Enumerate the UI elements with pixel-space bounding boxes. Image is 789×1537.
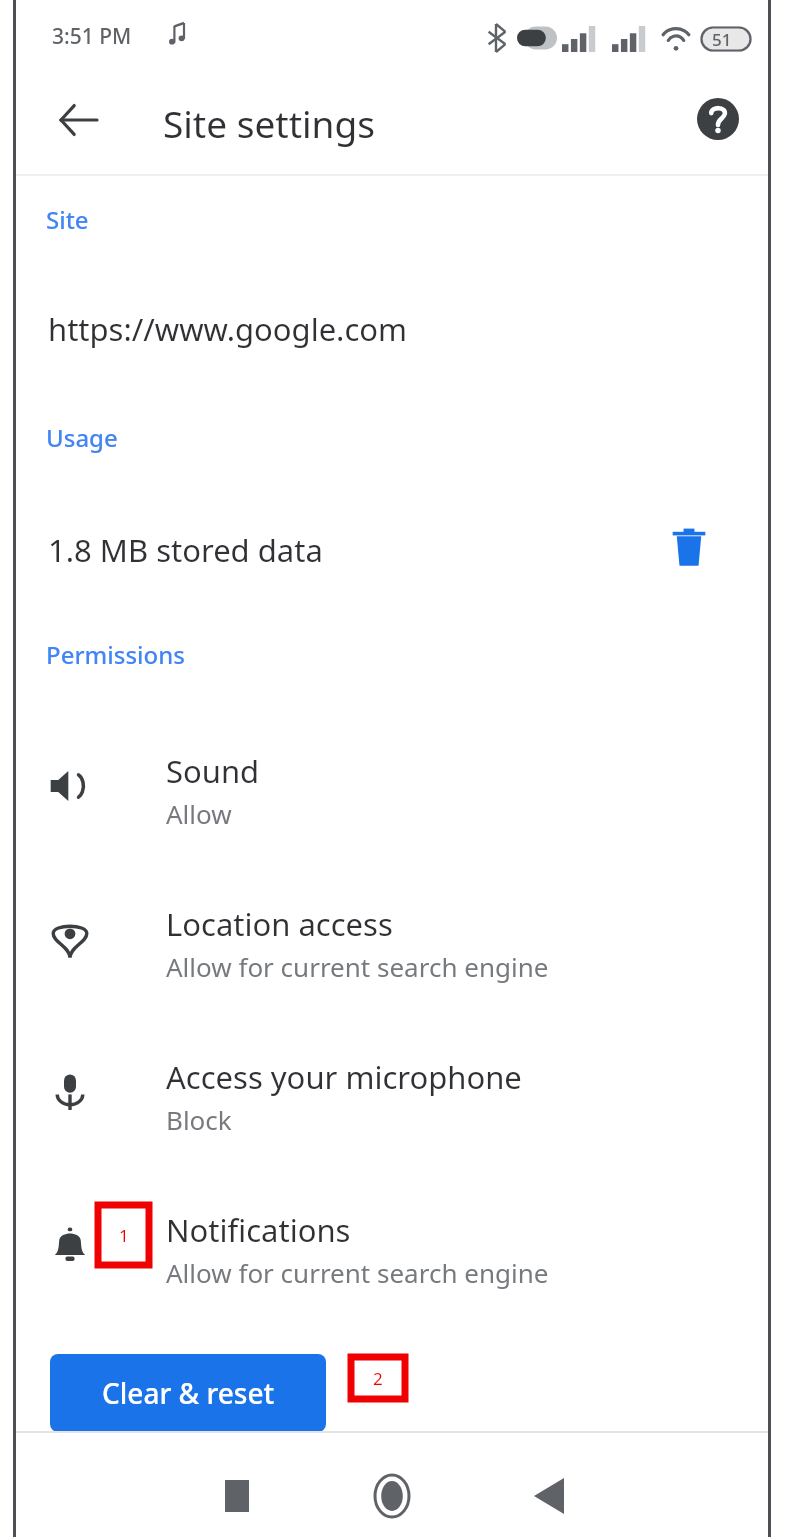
staticText: Usage bbox=[46, 421, 118, 454]
staticText: Site settings bbox=[163, 98, 375, 148]
staticText: Block bbox=[166, 1102, 232, 1137]
button[interactable]: Notifications bbox=[16, 1179, 768, 1319]
button[interactable]: Back bbox=[504, 1451, 594, 1537]
button[interactable]: Home bbox=[347, 1451, 437, 1537]
staticText: Access your microphone bbox=[166, 1056, 522, 1098]
button[interactable]: Recent apps bbox=[192, 1451, 282, 1537]
button[interactable]: Location access bbox=[16, 873, 768, 1013]
button[interactable]: Help bbox=[688, 89, 748, 149]
staticText: Location access bbox=[166, 903, 393, 945]
staticText: https://www.google.com bbox=[48, 308, 408, 350]
staticText: 3:51 PM bbox=[52, 22, 132, 51]
staticText: Site bbox=[46, 203, 89, 236]
staticText: Allow for current search engine bbox=[166, 1255, 549, 1290]
staticText: 2 bbox=[373, 1367, 383, 1390]
staticText: Allow bbox=[166, 796, 232, 831]
button[interactable]: Delete stored data bbox=[656, 514, 722, 580]
staticText: Notifications bbox=[166, 1209, 351, 1251]
staticText: Permissions bbox=[46, 638, 185, 671]
staticText: Clear & reset bbox=[102, 1374, 275, 1412]
button[interactable]: 1.8 MB stored data bbox=[16, 498, 768, 598]
button[interactable]: Back bbox=[48, 90, 108, 150]
button[interactable]: https://www.google.com bbox=[16, 282, 768, 376]
button[interactable]: Clear & reset bbox=[50, 1354, 326, 1432]
staticText: 51 bbox=[712, 28, 732, 51]
button[interactable]: Microphone bbox=[16, 1026, 768, 1166]
staticText: 1 bbox=[119, 1224, 129, 1247]
button[interactable]: Sound bbox=[16, 720, 768, 860]
staticText: Allow for current search engine bbox=[166, 949, 549, 984]
staticText: 1.8 MB stored data bbox=[48, 529, 323, 571]
staticText: Sound bbox=[166, 750, 260, 792]
